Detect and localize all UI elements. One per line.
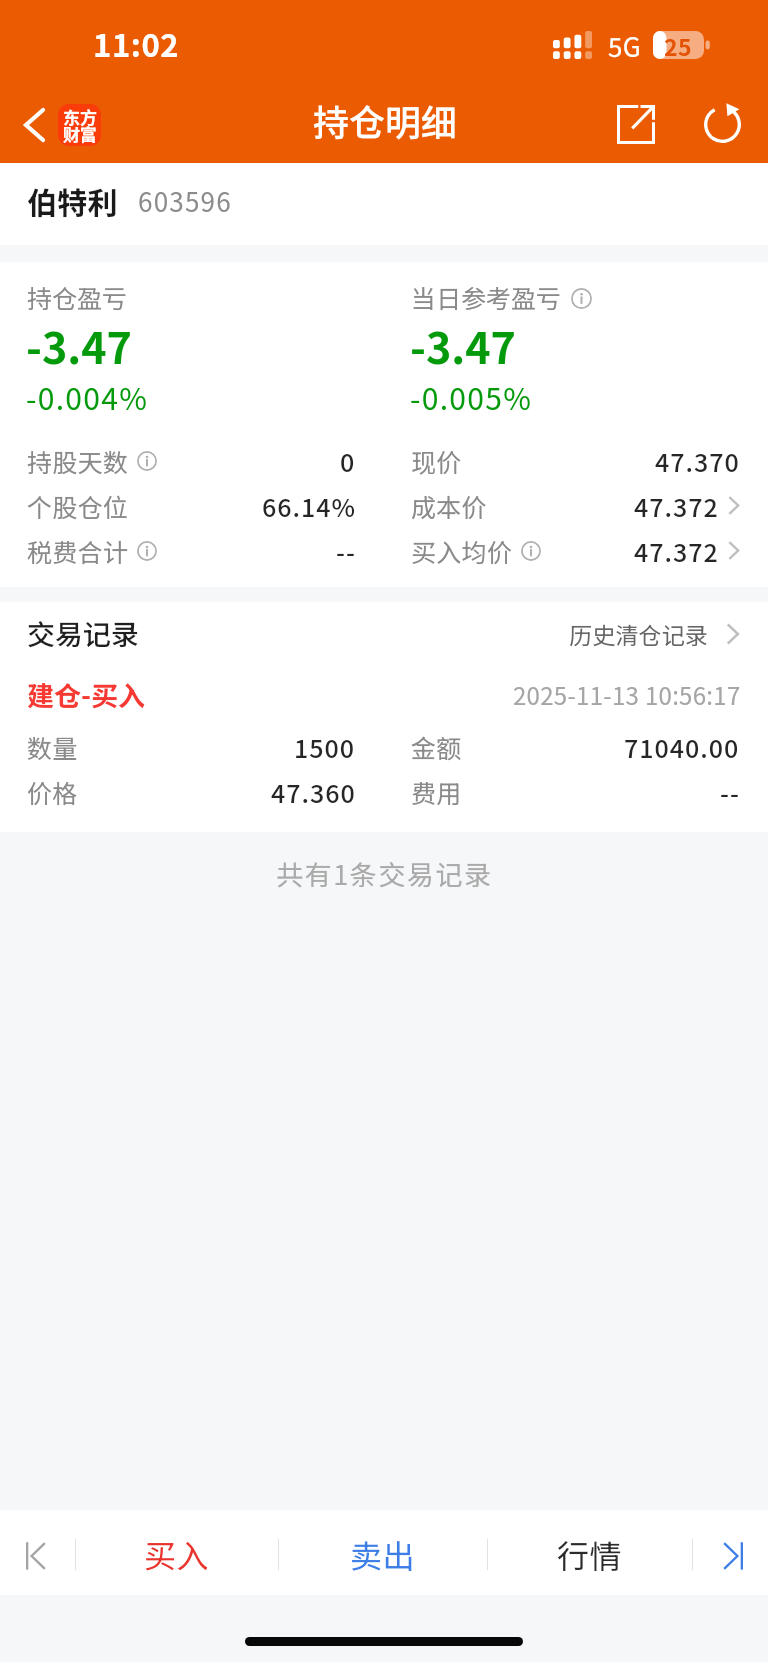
staticText: 现价	[411, 443, 462, 479]
button[interactable]: 行情	[487, 1510, 692, 1595]
button[interactable]: 个股仓位	[0, 483, 384, 528]
staticText: -0.004%	[26, 375, 149, 418]
staticText: 个股仓位	[27, 488, 129, 524]
staticText: 历史清仓记录	[569, 617, 709, 650]
staticText: 卖出	[350, 1531, 416, 1577]
staticText: 持仓盈亏	[27, 279, 128, 315]
staticText: --	[336, 533, 356, 569]
staticText: 价格	[27, 774, 78, 810]
staticText: 买入	[144, 1531, 210, 1577]
button[interactable]: 数量	[0, 724, 384, 769]
staticText: 税费合计	[27, 533, 129, 569]
staticText: 0	[340, 443, 356, 479]
staticText: -3.47	[26, 314, 132, 376]
button[interactable]: First page	[0, 1510, 75, 1595]
staticText: 数量	[27, 729, 78, 765]
staticText: 1500	[294, 729, 356, 765]
staticText: 47.370	[655, 443, 740, 479]
staticText: 金额	[411, 729, 462, 765]
staticText: 建仓-买入	[27, 675, 145, 714]
button[interactable]: Share	[602, 90, 670, 158]
button[interactable]: 现价	[384, 438, 768, 483]
staticText: 25	[664, 29, 692, 57]
button[interactable]: 成本价	[384, 483, 768, 528]
staticText: 交易记录	[27, 613, 140, 654]
staticText: 当日参考盈亏	[411, 279, 562, 315]
staticText: 持股天数	[27, 443, 129, 479]
button[interactable]: Last page	[692, 1510, 768, 1595]
staticText: 71040.00	[624, 729, 740, 765]
button[interactable]: 税费合计	[0, 528, 384, 573]
staticText: 2025-11-13 10:56:17	[513, 677, 741, 712]
staticText: 成本价	[411, 488, 487, 524]
staticText: 11:02	[93, 21, 180, 66]
button[interactable]: 买入	[75, 1510, 278, 1595]
staticText: 持仓明细	[313, 94, 458, 146]
staticText: 603596	[138, 182, 232, 220]
staticText: 费用	[411, 774, 462, 810]
button[interactable]: 价格	[0, 769, 384, 814]
staticText: 5G	[608, 27, 642, 65]
staticText: 东方 财富	[63, 104, 97, 146]
staticText: 47.372	[634, 533, 719, 569]
button[interactable]: Refresh	[688, 90, 756, 158]
button[interactable]: Back	[12, 95, 109, 155]
button[interactable]: 卖出	[278, 1510, 487, 1595]
staticText: 47.372	[634, 488, 719, 524]
staticText: 47.360	[271, 774, 356, 810]
staticText: -3.47	[410, 314, 516, 376]
staticText: 共有1条交易记录	[276, 854, 493, 893]
staticText: 行情	[557, 1531, 623, 1577]
staticText: --	[720, 774, 740, 810]
button[interactable]: 历史清仓记录	[557, 617, 768, 650]
staticText: -0.005%	[410, 375, 533, 418]
staticText: 66.14%	[262, 488, 356, 524]
button[interactable]: 持股天数	[0, 438, 384, 483]
staticText: 买入均价	[411, 533, 513, 569]
staticText: 伯特利	[27, 179, 118, 222]
button[interactable]: 买入均价	[384, 528, 768, 573]
button[interactable]: 费用	[384, 769, 768, 814]
button[interactable]: 金额	[384, 724, 768, 769]
